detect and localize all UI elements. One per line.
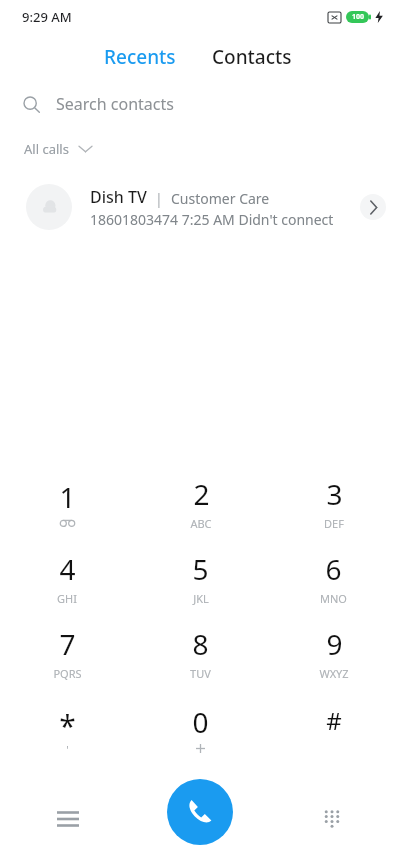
- button[interactable]: Dish TV: [0, 178, 400, 236]
- staticText: 6: [325, 550, 342, 588]
- staticText: 100: [352, 12, 365, 22]
- button[interactable]: #: [267, 690, 400, 765]
- staticText: 18601803474 7:25 AM Didn't connect: [90, 210, 334, 229]
- staticText: PQRS: [53, 666, 82, 681]
- staticText: 9:29 AM: [22, 8, 72, 26]
- staticText: Search contacts: [56, 93, 174, 115]
- staticText: 8: [192, 625, 209, 663]
- staticText: 1: [59, 478, 76, 516]
- staticText: 5: [192, 550, 209, 588]
- button[interactable]: 7: [0, 615, 134, 690]
- button[interactable]: 9: [267, 615, 400, 690]
- staticText: WXYZ: [319, 666, 349, 681]
- staticText: TUV: [190, 666, 211, 681]
- button[interactable]: Dialpad: [308, 795, 356, 843]
- button[interactable]: Menu: [44, 795, 92, 843]
- staticText: #: [326, 704, 342, 737]
- button[interactable]: 6: [267, 540, 400, 615]
- staticText: 4: [59, 550, 76, 588]
- button[interactable]: 1: [0, 465, 134, 540]
- button[interactable]: Call: [167, 779, 233, 845]
- staticText: Recents: [104, 44, 176, 70]
- button[interactable]: 8: [134, 615, 267, 690]
- staticText: MNO: [320, 591, 347, 606]
- staticText: 9: [326, 625, 343, 663]
- staticText: ABC: [190, 516, 212, 531]
- staticText: 7: [59, 625, 76, 663]
- staticText: 2: [193, 475, 210, 513]
- button[interactable]: 4: [0, 540, 134, 615]
- staticText: GHI: [57, 591, 77, 606]
- button[interactable]: Search contacts: [0, 80, 400, 128]
- button[interactable]: 2: [134, 465, 267, 540]
- staticText: DEF: [324, 516, 344, 531]
- button[interactable]: All calls: [22, 136, 94, 162]
- staticText: All calls: [24, 140, 69, 158]
- staticText: ': [66, 742, 69, 757]
- button[interactable]: Call details: [360, 194, 386, 220]
- button[interactable]: *: [0, 690, 134, 765]
- staticText: *: [59, 705, 76, 746]
- staticText: JKL: [193, 591, 209, 606]
- button[interactable]: Contacts: [206, 38, 298, 76]
- button[interactable]: Recents: [98, 38, 182, 76]
- staticText: 3: [326, 475, 343, 513]
- staticText: Contacts: [212, 44, 292, 70]
- staticText: Dish TV: [90, 186, 147, 208]
- staticText: |: [155, 189, 163, 208]
- staticText: 0: [192, 703, 209, 741]
- button[interactable]: 3: [267, 465, 400, 540]
- staticText: Customer Care: [171, 189, 270, 208]
- button[interactable]: 5: [134, 540, 267, 615]
- button[interactable]: 0: [134, 690, 267, 765]
